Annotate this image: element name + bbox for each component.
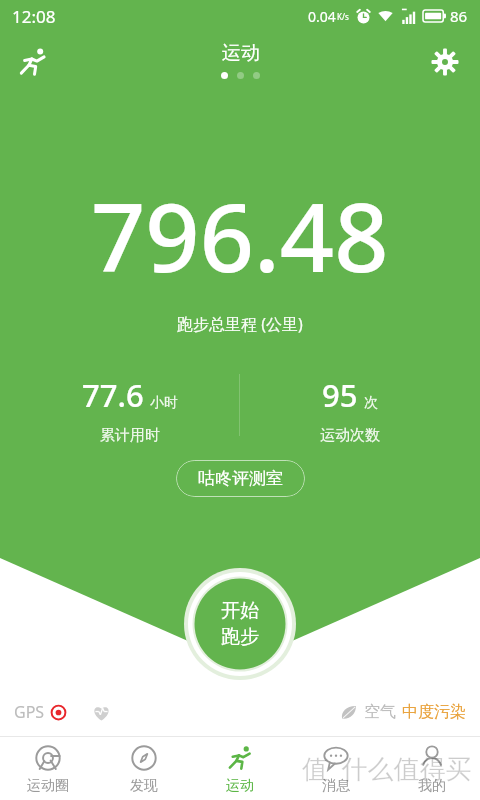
staticText: 运动圈 — [27, 777, 69, 795]
staticText: 空气 — [364, 702, 396, 722]
staticText: 中度污染 — [402, 702, 466, 722]
button[interactable]: 运动 — [192, 737, 288, 795]
staticText: 小时 — [150, 394, 178, 412]
button[interactable]: 消息 — [288, 737, 384, 795]
staticText: 跑步总里程 (公里) — [177, 313, 303, 335]
staticText: 跑步 — [221, 625, 259, 649]
staticText: 开始 — [221, 599, 259, 623]
staticText: 我的 — [418, 777, 446, 795]
button[interactable]: Heart rate — [90, 701, 112, 723]
button[interactable]: 我的 — [384, 737, 480, 795]
staticText: 运动 — [222, 41, 260, 65]
staticText: 值 什么值得买 — [302, 750, 472, 786]
staticText: 发现 — [130, 777, 158, 795]
staticText: 次 — [364, 394, 378, 412]
button[interactable]: Running records — [10, 39, 56, 85]
staticText: 12:08 — [12, 5, 56, 28]
button[interactable]: Settings — [422, 39, 468, 85]
button[interactable]: GPS — [14, 701, 66, 723]
staticText: 消息 — [322, 777, 350, 795]
staticText: K/s — [337, 11, 349, 22]
staticText: 95 — [322, 374, 358, 416]
button[interactable]: 开始 — [184, 568, 296, 680]
staticText: 累计用时 — [100, 426, 160, 445]
staticText: 运动 — [226, 777, 254, 795]
staticText: 86 — [450, 6, 468, 26]
staticText: 咕咚评测室 — [198, 468, 283, 489]
staticText: 0.04 — [308, 7, 336, 26]
button[interactable]: 发现 — [96, 737, 192, 795]
button[interactable]: 咕咚评测室 — [176, 460, 305, 497]
button[interactable]: 运动圈 — [0, 737, 96, 795]
staticText: 796.48 — [91, 170, 389, 299]
staticText: 运动次数 — [320, 426, 380, 445]
staticText: GPS — [14, 701, 45, 723]
button[interactable]: 空气 — [340, 702, 466, 722]
staticText: 77.6 — [82, 374, 144, 416]
